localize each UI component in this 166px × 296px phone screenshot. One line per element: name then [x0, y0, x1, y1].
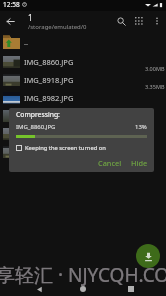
button[interactable]: IMG_8990.JPG [0, 107, 166, 125]
staticText: Keeping the screen turned on [25, 144, 106, 152]
staticText: IMG_8860.JPG [16, 123, 56, 131]
button[interactable]: IMG_8982.JPG [0, 89, 166, 107]
button[interactable]: IMG_8860.JPG [0, 53, 166, 71]
button[interactable]: Back [30, 282, 48, 296]
button[interactable]: .. [0, 31, 166, 53]
button[interactable]: Keeping the screen turned on [9, 144, 106, 152]
staticText: IMG_8860.JPG [24, 57, 74, 67]
button[interactable]: Cancel [94, 156, 126, 170]
staticText: Cancel [98, 158, 122, 168]
button[interactable]: Home [74, 282, 92, 296]
staticText: IMG_8982.JPG [24, 93, 74, 103]
staticText: 3.35MB [145, 83, 165, 89]
staticText: IMG_8990.JPG [24, 111, 74, 121]
staticText: 1 [28, 12, 33, 23]
button[interactable]: Grid view [130, 12, 148, 30]
button[interactable]: Download [136, 244, 160, 268]
button[interactable]: Recents [122, 282, 140, 296]
button[interactable]: More options [148, 12, 166, 30]
button[interactable]: IMG_8918.JPG [0, 71, 166, 89]
staticText: IMG_8992.JPG [24, 147, 74, 157]
staticText: Compressing: [16, 110, 60, 119]
staticText: 享轻汇 · NJYCQH.COM [0, 262, 166, 288]
staticText: /storage/emulated/0 [28, 23, 87, 31]
button[interactable]: Search [112, 12, 130, 30]
staticText: IMG_8991.JPG [24, 129, 74, 139]
button[interactable]: IMG_8991.JPG [0, 125, 166, 143]
staticText: 12:58 [3, 0, 20, 9]
staticText: 3.00MB [145, 65, 165, 71]
button[interactable]: Hide [127, 156, 152, 170]
staticText: 13% [135, 123, 147, 131]
button[interactable]: Back [0, 11, 20, 31]
staticText: IMG_8918.JPG [24, 75, 74, 85]
staticText: Hide [131, 158, 148, 168]
button[interactable]: IMG_8992.JPG [0, 143, 166, 161]
staticText: .. [24, 37, 29, 47]
